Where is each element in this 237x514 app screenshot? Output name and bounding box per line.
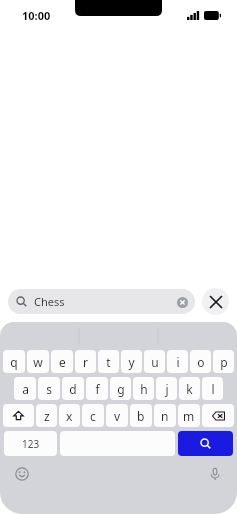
button[interactable]: e [51,350,73,373]
button[interactable]: r [75,350,96,373]
staticText: z [44,408,50,424]
button[interactable]: a [14,377,36,400]
button[interactable]: o [190,350,211,373]
button[interactable]: z [36,404,57,427]
staticText: v [114,408,121,424]
staticText: d [69,381,77,397]
staticText: g [117,381,125,397]
staticText: n [161,408,169,424]
button[interactable]: q [3,350,25,373]
button[interactable]: Emoji [12,464,32,484]
staticText: q [10,354,18,370]
button[interactable]: Backspace [202,404,234,427]
staticText: 10:00 [22,8,51,23]
staticText: t [106,354,111,370]
staticText: k [186,381,193,397]
staticText: y [128,354,135,370]
staticText: f [95,381,100,397]
button[interactable]: h [133,377,154,400]
staticText: m [183,408,195,424]
button[interactable]: Chess [8,289,195,314]
staticText: 123 [22,437,40,451]
button[interactable]: g [110,377,131,400]
staticText: e [59,354,66,370]
button[interactable]: k [179,377,200,400]
button[interactable]: f [86,377,108,400]
button[interactable]: n [154,404,176,427]
staticText: a [22,381,29,397]
button[interactable]: 123 [4,431,57,456]
staticText: p [220,354,228,370]
button[interactable]: s [38,377,60,400]
staticText: Chess [34,294,175,309]
staticText: h [140,381,148,397]
button[interactable]: m [178,404,200,427]
button[interactable]: p [213,350,234,373]
staticText: s [46,381,52,397]
button[interactable]: c [82,404,104,427]
staticText: u [151,354,159,370]
button[interactable]: Clear search [175,295,189,309]
button[interactable]: x [59,404,80,427]
staticText: l [211,381,215,397]
button[interactable]: d [62,377,84,400]
button[interactable]: l [202,377,223,400]
staticText: j [165,381,169,397]
button[interactable]: t [98,350,119,373]
button[interactable]: w [27,350,49,373]
staticText: i [176,354,180,370]
button[interactable]: y [121,350,142,373]
staticText: x [66,408,73,424]
button[interactable]: v [106,404,128,427]
button[interactable]: Close search [202,288,229,315]
staticText: b [137,408,145,424]
button[interactable]: Voice input [205,464,225,484]
staticText: w [33,354,43,370]
button[interactable]: i [167,350,188,373]
staticText: o [197,354,205,370]
staticText: r [83,354,88,370]
button[interactable]: b [130,404,152,427]
button[interactable]: Search [178,431,233,456]
button[interactable]: Shift [3,404,34,427]
staticText: c [90,408,96,424]
button[interactable]: j [156,377,177,400]
button[interactable]: u [144,350,165,373]
